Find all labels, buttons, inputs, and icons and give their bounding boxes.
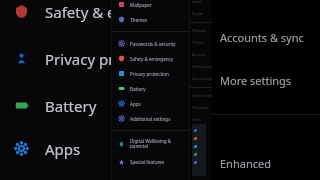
button[interactable]: Digital Wellbeing & parental controls (112, 135, 190, 153)
button[interactable]: Themes (112, 12, 190, 27)
staticText: Safety & emergency (45, 2, 112, 22)
button[interactable]: Safety & emergency (0, 0, 112, 35)
button[interactable] (194, 134, 206, 142)
staticText: Wallpaper (192, 29, 208, 33)
staticText: Enhanced (220, 156, 271, 171)
staticText: Apps (130, 101, 141, 107)
button[interactable]: Sound (190, 0, 212, 8)
staticText: Themes (130, 17, 148, 23)
staticText: Passwords & security (130, 41, 176, 47)
staticText: Passwords (192, 106, 208, 110)
staticText: Battery (192, 142, 203, 146)
button[interactable]: Apps (0, 129, 112, 168)
button[interactable] (194, 150, 206, 158)
staticText: Home screen (192, 94, 212, 98)
button[interactable]: Wallpaper (112, 0, 190, 12)
button[interactable]: Battery (190, 138, 212, 150)
staticText: Accounts & sync (220, 30, 304, 45)
staticText: Battery (45, 96, 97, 116)
button[interactable]: Extra settings (190, 73, 212, 85)
button[interactable]: Themes (190, 37, 212, 49)
button[interactable]: Battery (112, 81, 190, 96)
staticText: Special features (130, 159, 165, 165)
staticText: Notifications (192, 65, 211, 69)
button[interactable]: Wallpaper (190, 25, 212, 37)
staticText: Accounts (192, 53, 206, 57)
button[interactable]: Passwords & security (112, 36, 190, 51)
button[interactable]: Battery (0, 82, 112, 129)
staticText: Safety & emergency (130, 56, 174, 62)
button[interactable] (194, 126, 206, 134)
staticText: Sound (192, 0, 202, 4)
staticText: Wallpaper (130, 2, 152, 8)
button[interactable]: Additional settings (112, 111, 190, 126)
button[interactable] (194, 142, 206, 150)
button[interactable]: Privacy (190, 126, 212, 138)
staticText: More settings (220, 73, 292, 88)
staticText: Display (192, 12, 203, 16)
button[interactable]: Special features (112, 153, 190, 171)
button[interactable]: Home screen (190, 90, 212, 102)
button[interactable]: Notifications (190, 61, 212, 73)
staticText: Safety (192, 118, 202, 122)
staticText: Apps (45, 139, 81, 159)
button[interactable]: Passwords (190, 102, 212, 114)
staticText: Extra settings (192, 77, 212, 81)
staticText: Additional settings (130, 116, 171, 122)
staticText: Privacy protection (45, 49, 112, 69)
button[interactable]: Accounts (190, 49, 212, 61)
button[interactable]: Safety & emergency (112, 51, 190, 66)
button[interactable]: Privacy protection (0, 35, 112, 82)
staticText: Digital Wellbeing & parental controls (130, 138, 190, 150)
button[interactable]: Apps (112, 96, 190, 111)
button[interactable]: Display (190, 8, 212, 20)
button[interactable] (194, 158, 206, 166)
staticText: Privacy (192, 130, 203, 134)
staticText: Battery (130, 86, 146, 92)
staticText: Themes (192, 41, 204, 45)
button[interactable]: Privacy protection (112, 66, 190, 81)
staticText: Privacy protection (130, 71, 169, 77)
button[interactable]: Safety (190, 114, 212, 126)
